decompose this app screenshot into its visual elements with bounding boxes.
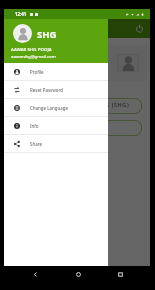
staticText: Share [30, 141, 42, 147]
staticText: aawarshg@gmail.com [11, 53, 56, 59]
button[interactable]: Log out [133, 22, 146, 35]
button[interactable]: VIEW MEMBERS (SHG) [10, 98, 142, 114]
staticText: 12:41 [15, 11, 27, 17]
staticText: Profile [30, 69, 44, 75]
staticText: AAWAR SHG POOJA [11, 46, 52, 52]
button[interactable]: Reset Password [4, 81, 108, 98]
button[interactable]: Change Language [4, 99, 108, 116]
button[interactable]: ADD MEETING (SHG) [10, 120, 142, 136]
staticText: ADD MEETING (SHG) [36, 123, 100, 131]
button[interactable]: Profile [4, 63, 108, 80]
staticText: Info [30, 123, 39, 129]
staticText: Change Language [30, 105, 69, 111]
button[interactable]: Share [4, 135, 108, 152]
button[interactable]: Info [4, 117, 108, 134]
button[interactable]: Home [72, 268, 84, 280]
staticText: SHG [37, 28, 57, 41]
button[interactable]: Back [29, 268, 41, 280]
button[interactable]: Recent apps [114, 268, 126, 280]
staticText: Reset Password [30, 87, 63, 93]
staticText: VIEW MEMBERS (SHG) [61, 101, 130, 109]
